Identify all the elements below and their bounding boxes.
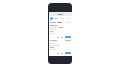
button[interactable]: Account [50, 17, 53, 20]
button[interactable] [65, 36, 71, 38]
button[interactable] [49, 12, 72, 16]
button[interactable] [65, 52, 71, 54]
